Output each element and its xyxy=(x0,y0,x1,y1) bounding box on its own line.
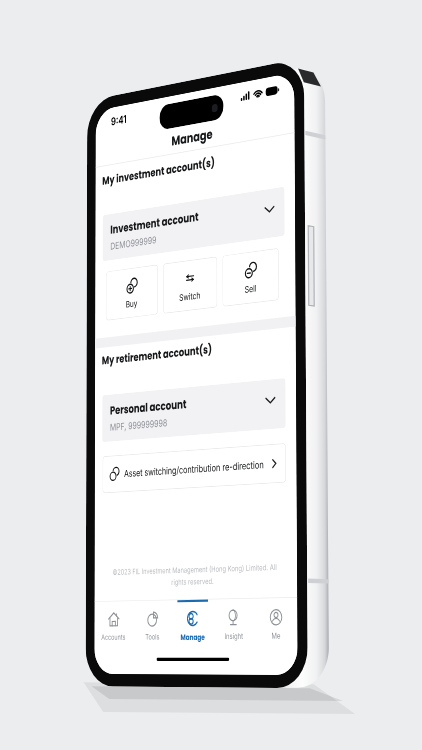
staticText: ©2023 FIL Investment Management (Hong Ko… xyxy=(105,562,285,588)
staticText: DEMO999999 xyxy=(110,234,156,252)
button[interactable]: Insight xyxy=(213,599,254,650)
staticText: Personal account xyxy=(110,396,187,419)
staticText: Asset switching/contribution re-directio… xyxy=(124,458,264,479)
staticText: Tools xyxy=(145,632,160,641)
button[interactable]: Buy xyxy=(106,264,158,321)
staticText: Accounts xyxy=(101,632,126,641)
other: Expand xyxy=(263,200,276,218)
button[interactable]: Manage xyxy=(172,599,213,650)
staticText: My investment account(s) xyxy=(102,154,215,189)
staticText: Insight xyxy=(224,631,243,640)
staticText: 9:41 xyxy=(111,112,127,127)
staticText: Sell xyxy=(245,282,257,295)
staticText: Switch xyxy=(179,289,201,303)
staticText: Buy xyxy=(126,297,138,310)
button[interactable]: Personal account xyxy=(102,378,286,442)
staticText: Me xyxy=(271,631,281,640)
staticText: Manage xyxy=(180,631,205,642)
button[interactable]: Switch xyxy=(163,256,217,314)
staticText: Investment account xyxy=(110,208,199,238)
button[interactable]: Accounts xyxy=(94,601,133,651)
staticText: My retirement account(s) xyxy=(102,341,212,368)
staticText: Manage xyxy=(171,125,213,150)
other: Expand xyxy=(264,391,277,409)
staticText: MPF, 999999998 xyxy=(110,416,167,433)
button[interactable]: Investment account xyxy=(102,187,285,261)
button[interactable]: Tools xyxy=(133,600,172,651)
button[interactable]: Asset switching/contribution re-directio… xyxy=(102,443,286,493)
button[interactable]: Me xyxy=(254,598,297,650)
button[interactable]: Sell xyxy=(222,248,279,307)
